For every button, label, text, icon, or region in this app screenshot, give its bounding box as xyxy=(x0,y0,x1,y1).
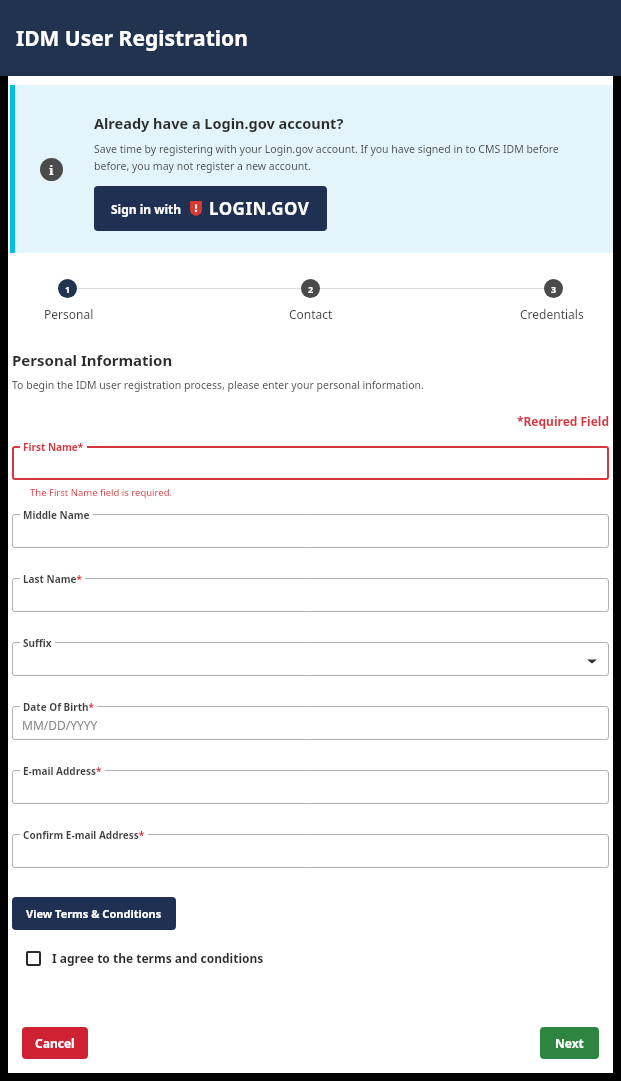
button[interactable]: Middle Name xyxy=(12,514,609,548)
staticText: Cancel xyxy=(35,1035,75,1051)
staticText: The First Name field is required. xyxy=(30,486,173,499)
staticText: Sign in with xyxy=(111,201,182,217)
staticText: Date Of Birth* xyxy=(23,700,94,714)
button[interactable]: Date Of Birth* xyxy=(12,706,609,740)
staticText: Already have a Login.gov account? xyxy=(94,113,344,133)
staticText: I agree to the terms and conditions xyxy=(52,950,264,966)
staticText: 1 xyxy=(65,283,71,295)
staticText: i xyxy=(49,161,54,179)
staticText: Personal xyxy=(44,306,94,322)
staticText: First Name* xyxy=(23,440,84,454)
button[interactable]: Suffix xyxy=(12,642,609,676)
button[interactable]: View Terms & Conditions xyxy=(12,897,176,930)
staticText: MM/DD/YYYY xyxy=(22,717,98,733)
staticText: 3 xyxy=(551,283,557,295)
staticText: *Required Field xyxy=(12,413,609,429)
staticText: IDM User Registration xyxy=(16,24,248,53)
staticText: Suffix xyxy=(23,636,52,650)
staticText: LOGIN.GOV xyxy=(209,197,310,220)
staticText: View Terms & Conditions xyxy=(26,906,162,921)
button[interactable]: Sign in with xyxy=(94,186,327,231)
staticText: Personal Information xyxy=(12,350,173,370)
button[interactable]: First Name* xyxy=(12,446,609,480)
button[interactable]: Next xyxy=(540,1027,599,1059)
button[interactable]: Confirm E-mail Address* xyxy=(12,834,609,868)
staticText: E-mail Address* xyxy=(23,764,102,778)
button[interactable]: I agree to the terms and conditions xyxy=(12,950,264,966)
staticText: Contact xyxy=(289,306,333,322)
staticText: 2 xyxy=(308,283,314,295)
staticText: Next xyxy=(555,1035,584,1051)
staticText: Last Name* xyxy=(23,572,82,586)
staticText: Middle Name xyxy=(23,508,90,522)
staticText: To begin the IDM user registration proce… xyxy=(12,378,424,392)
staticText: Credentials xyxy=(520,306,584,322)
staticText: Confirm E-mail Address* xyxy=(23,828,145,842)
button[interactable]: E-mail Address* xyxy=(12,770,609,804)
button[interactable]: Last Name* xyxy=(12,578,609,612)
button[interactable]: Cancel xyxy=(22,1027,88,1059)
staticText: Save time by registering with your Login… xyxy=(94,142,593,173)
